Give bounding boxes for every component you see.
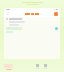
- button[interactable]: Primary item: [4, 64, 13, 70]
- button[interactable]: Profile: [54, 12, 58, 16]
- button[interactable]: Back: [6, 12, 10, 16]
- button[interactable]: Item two: [35, 64, 39, 69]
- button[interactable]: Send: [55, 27, 58, 30]
- button[interactable]: [11, 13, 53, 15]
- button[interactable]: Item three: [43, 64, 47, 69]
